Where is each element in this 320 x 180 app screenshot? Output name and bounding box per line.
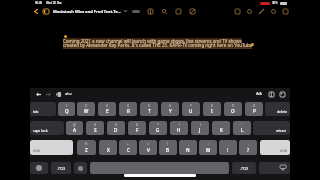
button[interactable]: Bookmark <box>174 6 182 16</box>
button[interactable]: ) <box>191 121 209 135</box>
button[interactable]: abc <box>64 90 73 98</box>
button[interactable]: & <box>128 121 146 135</box>
button[interactable]: Undo <box>34 89 42 99</box>
button[interactable]: Format text <box>267 89 275 99</box>
button[interactable]: 0 <box>245 102 263 116</box>
button[interactable]: + <box>119 140 137 155</box>
button[interactable] <box>74 162 87 174</box>
button[interactable]: Back <box>32 7 39 16</box>
button[interactable]: @ <box>66 121 83 135</box>
staticText: 0 <box>253 104 255 108</box>
staticText: , <box>228 142 229 146</box>
staticText: R <box>127 108 130 114</box>
staticText: 7 <box>190 104 192 108</box>
staticText: % <box>85 142 88 146</box>
staticText: & <box>136 123 139 127</box>
button[interactable]: Camera <box>245 6 253 16</box>
staticText: abc <box>65 91 72 97</box>
button[interactable]: 4 <box>119 102 137 116</box>
staticText: M <box>206 147 211 153</box>
button[interactable] <box>90 162 229 174</box>
button[interactable]: 2 <box>77 102 95 116</box>
staticText: : <box>208 142 209 146</box>
staticText: tab <box>33 109 39 114</box>
button[interactable]: : <box>199 140 217 155</box>
button[interactable] <box>259 162 290 174</box>
staticText: S <box>94 127 97 133</box>
button[interactable]: 7 <box>182 102 200 116</box>
button[interactable]: = <box>139 140 157 155</box>
button[interactable]: Dictionary <box>146 6 154 16</box>
button[interactable]: . <box>239 140 257 155</box>
button[interactable]: .?123 <box>51 162 71 174</box>
button[interactable]: Insert media <box>278 89 286 99</box>
button[interactable]: * <box>149 121 167 135</box>
staticText: P <box>253 108 256 114</box>
staticText: N <box>186 147 190 153</box>
button[interactable] <box>30 162 48 174</box>
staticText: 4 <box>127 104 129 108</box>
button[interactable]: " <box>233 121 251 135</box>
button[interactable]: ' <box>212 121 230 135</box>
button[interactable]: 3 <box>98 102 116 116</box>
button[interactable]: # <box>86 121 104 135</box>
staticText: ! <box>227 147 229 153</box>
button[interactable]: AA <box>255 90 263 98</box>
staticText: ( <box>179 123 180 127</box>
button[interactable]: Share sheet <box>132 10 140 13</box>
button[interactable]: shift <box>260 140 290 155</box>
button[interactable]: Share <box>233 6 241 16</box>
button[interactable]: Redo <box>44 89 52 99</box>
button[interactable]: More <box>269 6 277 16</box>
staticText: # <box>94 123 96 127</box>
button[interactable]: $ <box>107 121 125 135</box>
button[interactable]: ; <box>179 140 197 155</box>
button[interactable]: ( <box>170 121 188 135</box>
button[interactable]: , <box>219 140 237 155</box>
button[interactable]: return <box>253 121 290 135</box>
button[interactable]: Markup <box>257 6 265 16</box>
button[interactable]: 6 <box>161 102 179 116</box>
staticText: 5 <box>148 104 150 108</box>
staticText: .?123 <box>57 166 66 171</box>
staticText: Wed 20 Dec <box>46 1 62 5</box>
button[interactable]: 8 <box>203 102 221 116</box>
button[interactable]: Sidebar <box>42 7 50 16</box>
staticText: Z <box>85 147 88 153</box>
button[interactable]: Highlight <box>188 6 196 16</box>
staticText: J <box>199 127 201 133</box>
button[interactable]: Account <box>281 6 289 16</box>
button[interactable]: Search <box>160 6 168 16</box>
button[interactable]: .?123 <box>232 162 256 174</box>
staticText: ) <box>200 123 201 127</box>
staticText: 2 <box>85 104 87 108</box>
staticText: L <box>241 127 244 133</box>
button[interactable]: 5 <box>140 102 158 116</box>
staticText: 3 <box>106 104 108 108</box>
staticText: @ <box>73 123 76 127</box>
button[interactable]: caps lock <box>30 121 64 135</box>
staticText: ' <box>221 123 222 127</box>
button[interactable]: Paste <box>54 89 62 99</box>
staticText: T <box>148 108 151 114</box>
staticText: V <box>147 147 150 153</box>
button[interactable]: delete <box>265 102 290 116</box>
button[interactable]: % <box>77 140 96 155</box>
button[interactable]: / <box>159 140 177 155</box>
staticText: K <box>220 127 223 133</box>
staticText: / <box>167 142 169 146</box>
staticText: D <box>114 127 118 133</box>
button[interactable]: 1 <box>58 102 75 116</box>
staticText: Y <box>169 108 172 114</box>
staticText: $ <box>115 123 117 127</box>
staticText: E <box>106 108 109 114</box>
staticText: F <box>136 127 139 133</box>
button[interactable]: 9 <box>224 102 242 116</box>
button[interactable]: shift <box>30 140 73 155</box>
button[interactable]: - <box>99 140 117 155</box>
button[interactable]: tab <box>30 102 56 116</box>
staticText: 1 <box>66 104 68 108</box>
staticText: A <box>73 127 77 133</box>
staticText: . <box>248 142 249 146</box>
staticText: AA <box>256 91 262 97</box>
